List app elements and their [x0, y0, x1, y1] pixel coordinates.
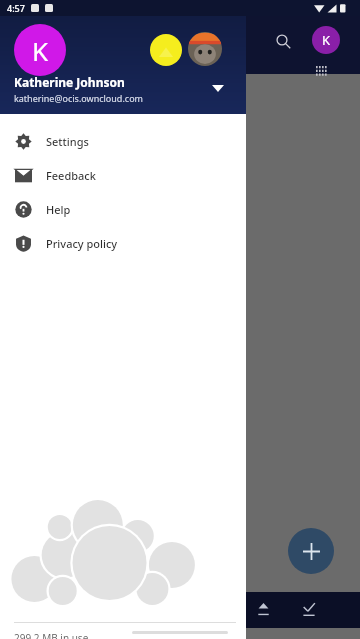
button[interactable]: Switch to grid view	[312, 62, 332, 82]
button[interactable]: Current account Katherine Johnson	[14, 24, 66, 76]
button[interactable]: Uploads	[252, 598, 274, 620]
button[interactable]: Help	[0, 192, 246, 226]
button[interactable]: Switch account	[188, 32, 222, 66]
button[interactable]: Settings	[0, 124, 246, 158]
button[interactable]: Privacy policy	[0, 226, 246, 260]
staticText: 299.2 MB in use	[14, 631, 89, 639]
button[interactable]: Add	[288, 528, 334, 574]
staticText: Help	[46, 202, 71, 217]
staticText: 4:57	[7, 2, 25, 14]
staticText: katherine@ocis.owncloud.com	[14, 92, 143, 104]
button[interactable]: Available offline	[298, 598, 320, 620]
staticText: K	[322, 31, 331, 49]
staticText: Settings	[46, 134, 89, 149]
staticText: Feedback	[46, 168, 96, 183]
staticText: Privacy policy	[46, 236, 118, 251]
button[interactable]: Switch account	[150, 34, 182, 66]
button[interactable]: Feedback	[0, 158, 246, 192]
button[interactable]: Current account Katherine Johnson	[0, 16, 246, 114]
button[interactable]: Account	[312, 26, 340, 54]
button[interactable]: Expand account list	[208, 78, 228, 98]
button[interactable]: Search	[272, 30, 294, 52]
staticText: Katherine Johnson	[14, 74, 125, 90]
staticText: K	[32, 33, 49, 68]
